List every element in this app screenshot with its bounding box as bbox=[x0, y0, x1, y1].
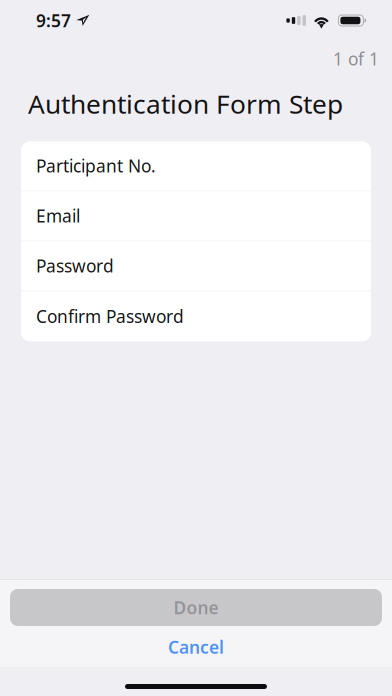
button[interactable]: Password bbox=[21, 241, 371, 291]
button[interactable]: Confirm Password bbox=[21, 291, 371, 341]
staticText: 1 of 1 bbox=[333, 47, 379, 71]
button[interactable]: Email bbox=[21, 191, 371, 241]
staticText: Authentication Form Step bbox=[28, 86, 343, 121]
staticText: Confirm Password bbox=[36, 305, 184, 328]
staticText: Done bbox=[173, 596, 218, 619]
button[interactable]: Cancel bbox=[0, 632, 392, 662]
staticText: Cancel bbox=[168, 635, 224, 659]
staticText: Password bbox=[36, 254, 114, 278]
staticText: Email bbox=[36, 204, 80, 228]
button[interactable]: Done bbox=[10, 589, 382, 626]
button[interactable]: Participant No. bbox=[21, 141, 371, 191]
staticText: Participant No. bbox=[36, 154, 156, 178]
staticText: 9:57 bbox=[36, 9, 71, 32]
